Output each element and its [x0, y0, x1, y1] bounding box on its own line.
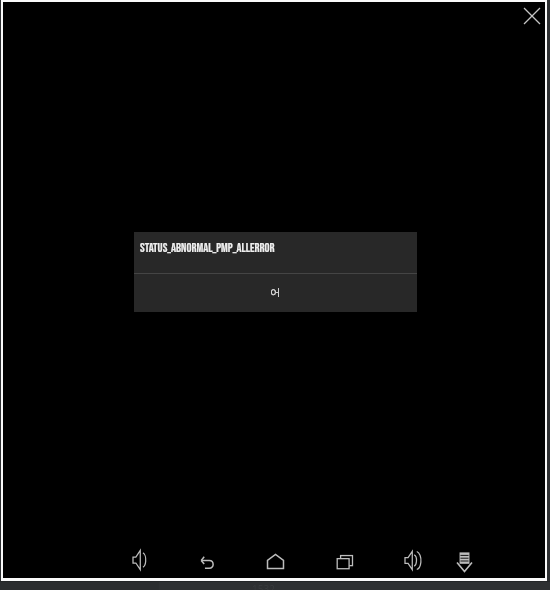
button[interactable]: Recent apps	[328, 547, 361, 577]
button[interactable]: Close	[516, 0, 548, 32]
button[interactable]: Notifications	[449, 544, 480, 580]
staticText: STATUS_ABNORMAL_PMP_ALLERROR	[140, 241, 275, 256]
button[interactable]: Home	[259, 546, 292, 577]
button[interactable]: Volume down	[125, 542, 154, 578]
button[interactable]: Back	[192, 548, 223, 577]
staticText: 어	[270, 286, 280, 299]
button[interactable]: Volume up	[397, 543, 427, 578]
button[interactable]: OK	[134, 274, 417, 312]
